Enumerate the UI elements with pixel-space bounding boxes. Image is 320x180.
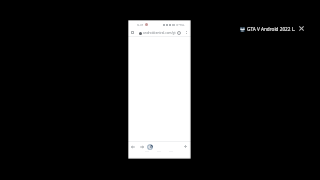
staticText: androidcentral.com/gt (143, 31, 176, 35)
button[interactable]: Forward (140, 145, 144, 149)
button[interactable]: Reload page (177, 31, 181, 35)
button[interactable]: Switch tabs (131, 31, 134, 34)
staticText: 9:41 (137, 23, 144, 26)
button[interactable]: New tab (184, 145, 187, 148)
button[interactable]: GTA V Android 2022 L. (240, 24, 296, 34)
button[interactable]: Back (131, 145, 135, 149)
button[interactable]: Home (147, 144, 153, 150)
button[interactable]: Close recording (299, 26, 304, 31)
button[interactable]: More options (185, 31, 187, 34)
staticText: GTA V Android 2022 L. (247, 26, 296, 32)
staticText: 87% (176, 23, 185, 26)
